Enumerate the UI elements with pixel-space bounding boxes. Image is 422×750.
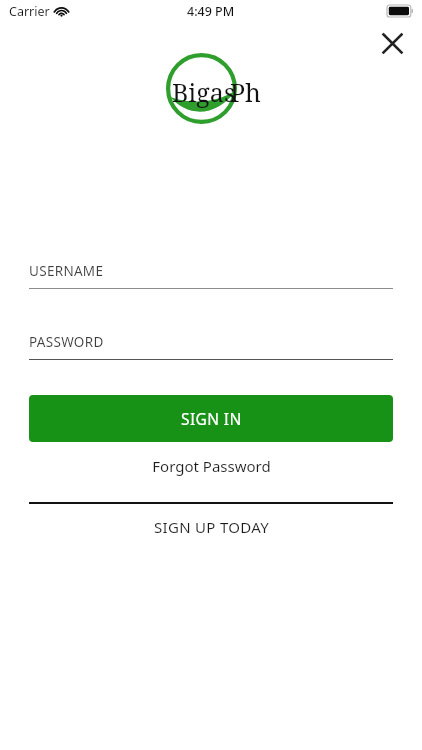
staticText: Carrier (9, 3, 50, 20)
staticText: SIGN IN (181, 408, 242, 429)
staticText: Ph (230, 75, 261, 109)
staticText: PASSWORD (29, 333, 104, 351)
button[interactable]: USERNAME (29, 262, 393, 288)
button[interactable]: SIGN UP TODAY (29, 514, 393, 540)
staticText: SIGN UP TODAY (154, 517, 269, 537)
staticText: Bigas (172, 75, 236, 109)
staticText: USERNAME (29, 262, 104, 280)
staticText: 4:49 PM (187, 3, 235, 20)
staticText: Forgot Password (152, 456, 271, 476)
button[interactable]: Close (374, 25, 410, 61)
button[interactable]: Forgot Password (29, 450, 393, 482)
button[interactable]: SIGN IN (29, 395, 393, 442)
button[interactable]: PASSWORD (29, 333, 393, 359)
